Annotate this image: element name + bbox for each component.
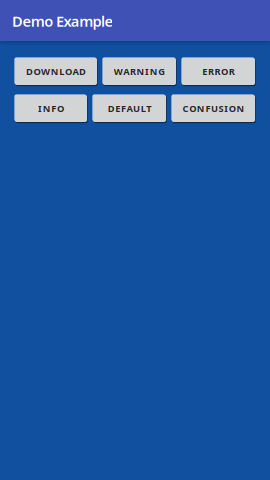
- button[interactable]: DOWNLOAD: [15, 58, 97, 85]
- staticText: CONFUSION: [183, 102, 244, 115]
- button[interactable]: DEFAULT: [93, 95, 166, 122]
- staticText: ERROR: [202, 65, 235, 78]
- button[interactable]: INFO: [15, 95, 87, 122]
- staticText: Demo Example: [12, 11, 113, 31]
- staticText: DOWNLOAD: [26, 65, 86, 78]
- staticText: INFO: [38, 102, 64, 115]
- staticText: WARNING: [114, 65, 165, 78]
- staticText: DEFAULT: [108, 102, 151, 115]
- button[interactable]: WARNING: [103, 58, 176, 85]
- button[interactable]: CONFUSION: [172, 95, 255, 122]
- button[interactable]: ERROR: [182, 58, 255, 85]
